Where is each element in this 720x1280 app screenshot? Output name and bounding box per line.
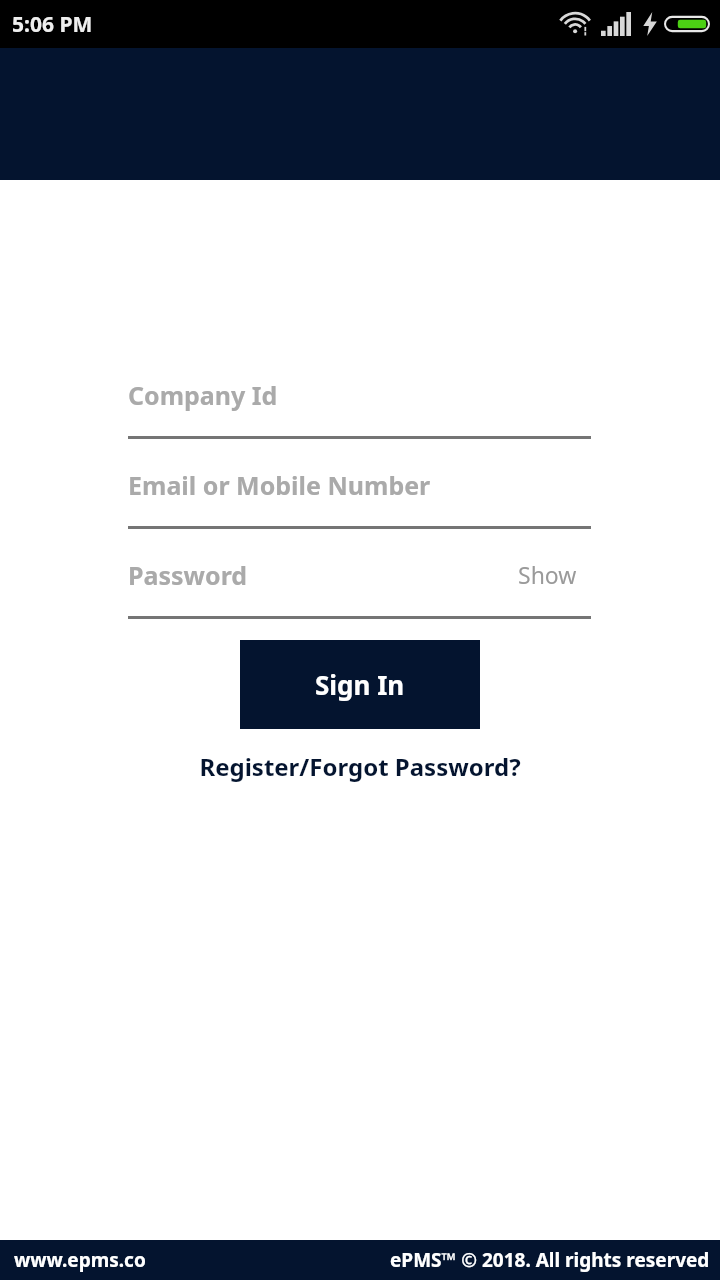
staticText: Email or Mobile Number (128, 468, 431, 502)
staticText: Company Id (128, 378, 278, 412)
staticText: 5:06 PM (12, 10, 93, 39)
button[interactable]: Sign In (240, 640, 480, 729)
staticText: Sign In (315, 667, 405, 702)
staticText: Register/Forgot Password? (199, 750, 521, 783)
button[interactable]: Show (518, 559, 577, 590)
button[interactable]: Company Id (128, 349, 591, 439)
button[interactable]: www.epms.co (14, 1247, 146, 1273)
button[interactable]: Email or Mobile Number (128, 439, 591, 529)
staticText: www.epms.co (14, 1247, 146, 1273)
staticText: Password (128, 558, 248, 592)
staticText: ePMS™ © 2018. All rights reserved (390, 1247, 710, 1273)
staticText: Show (518, 559, 577, 590)
button[interactable]: Register/Forgot Password? (0, 745, 720, 787)
button[interactable]: Password (128, 529, 591, 619)
